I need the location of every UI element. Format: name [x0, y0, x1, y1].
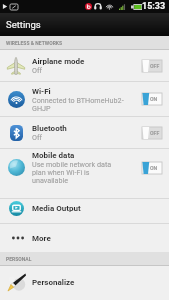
staticText: Wi-Fi — [32, 87, 51, 96]
staticText: ON — [150, 96, 158, 102]
staticText: Personalize — [32, 278, 75, 287]
staticText: Connected to BTHomeHub2- GHJP — [32, 96, 124, 112]
button[interactable]: Settings — [0, 13, 169, 36]
button[interactable]: Switch on — [142, 162, 162, 174]
button[interactable]: Bluetooth — [0, 117, 169, 148]
staticText: 15:33 — [142, 1, 166, 12]
staticText: Use mobile network data plan when Wi-Fi … — [32, 160, 112, 184]
staticText: ON — [150, 165, 158, 171]
button[interactable]: Switch on — [142, 93, 162, 105]
button[interactable]: Personalize — [0, 266, 169, 299]
staticText: WIRELESS & NETWORKS — [6, 40, 63, 46]
staticText: Off — [32, 66, 42, 74]
button[interactable]: Airplane mode — [0, 50, 169, 81]
staticText: PERSONAL — [6, 256, 32, 262]
staticText: Off — [32, 133, 42, 141]
staticText: Airplane mode — [32, 57, 85, 66]
button[interactable]: Switch off — [142, 127, 162, 139]
button[interactable]: Mobile data — [0, 149, 169, 198]
staticText: Bluetooth — [32, 124, 67, 133]
staticText: OFF — [150, 130, 160, 136]
button[interactable]: More — [0, 224, 169, 252]
staticText: Media Output — [32, 204, 81, 213]
button[interactable]: Wi-Fi — [0, 82, 169, 116]
staticText: OFF — [150, 63, 160, 69]
staticText: Settings — [6, 19, 41, 30]
button[interactable]: Switch off — [142, 60, 162, 72]
staticText: More — [32, 234, 51, 243]
button[interactable]: Media Output — [0, 199, 169, 223]
staticText: Mobile data — [32, 151, 75, 160]
